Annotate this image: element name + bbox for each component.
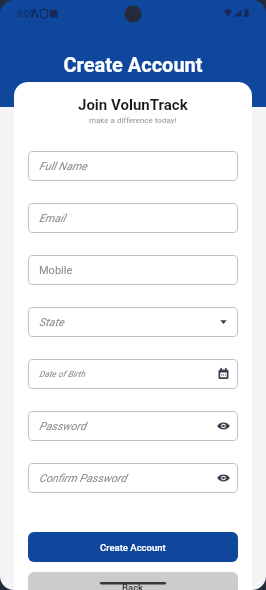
other: Show password bbox=[28, 463, 238, 493]
staticText: Create Account bbox=[100, 542, 166, 553]
button[interactable]: Confirm Password bbox=[28, 463, 238, 493]
staticText: Join VolunTrack bbox=[78, 96, 188, 114]
staticText: State bbox=[39, 316, 64, 329]
staticText: Back bbox=[122, 582, 144, 590]
staticText: Create Account bbox=[0, 53, 266, 76]
other: Open dropdown bbox=[28, 307, 238, 337]
button[interactable]: Date of Birth bbox=[28, 359, 238, 389]
staticText: Email bbox=[39, 212, 66, 225]
staticText: Confirm Password bbox=[39, 472, 127, 485]
button[interactable]: Mobile bbox=[28, 255, 238, 285]
staticText: Date of Birth bbox=[39, 369, 86, 379]
staticText: Mobile bbox=[39, 264, 73, 277]
staticText: Password bbox=[39, 420, 87, 433]
other: Pick date bbox=[28, 359, 238, 389]
button[interactable]: Email bbox=[28, 203, 238, 233]
button[interactable]: Password bbox=[28, 411, 238, 441]
staticText: Full Name bbox=[39, 160, 87, 173]
button[interactable]: State bbox=[28, 307, 238, 337]
other: Show password bbox=[28, 411, 238, 441]
button[interactable]: Back bbox=[28, 572, 238, 590]
staticText: 8:09 bbox=[17, 9, 34, 19]
button[interactable]: Create Account bbox=[28, 532, 238, 562]
button[interactable]: Full Name bbox=[28, 151, 238, 181]
staticText: make a difference today! bbox=[89, 116, 177, 125]
